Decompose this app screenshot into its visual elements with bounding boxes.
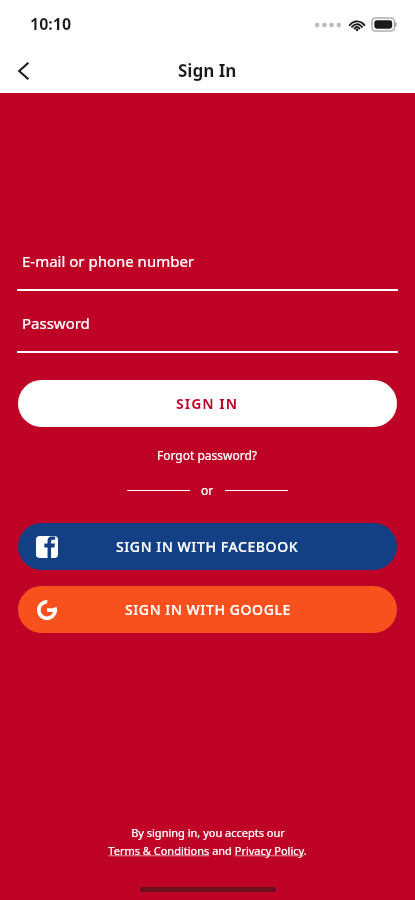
other: Facebook <box>36 536 58 558</box>
button[interactable]: SIGN IN <box>18 380 397 427</box>
other: Google <box>36 599 58 621</box>
button[interactable]: Forgot password? <box>149 443 266 467</box>
staticText: SIGN IN WITH GOOGLE <box>125 600 291 619</box>
staticText: Sign In <box>178 59 237 82</box>
button[interactable]: Back <box>0 48 48 93</box>
button[interactable]: Password <box>17 313 398 353</box>
staticText: By signing in, you accepts our <box>131 825 285 840</box>
staticText: SIGN IN <box>176 394 239 413</box>
button[interactable]: Facebook <box>18 523 397 570</box>
staticText: Password <box>22 313 90 333</box>
button[interactable]: E-mail or phone number <box>17 251 398 291</box>
button[interactable]: Terms & Conditions and Privacy Policy. <box>108 843 307 858</box>
staticText: 10:10 <box>30 13 72 35</box>
button[interactable]: Google <box>18 586 397 633</box>
staticText: SIGN IN WITH FACEBOOK <box>116 537 299 556</box>
staticText: E-mail or phone number <box>22 251 195 271</box>
staticText: or <box>201 482 214 498</box>
